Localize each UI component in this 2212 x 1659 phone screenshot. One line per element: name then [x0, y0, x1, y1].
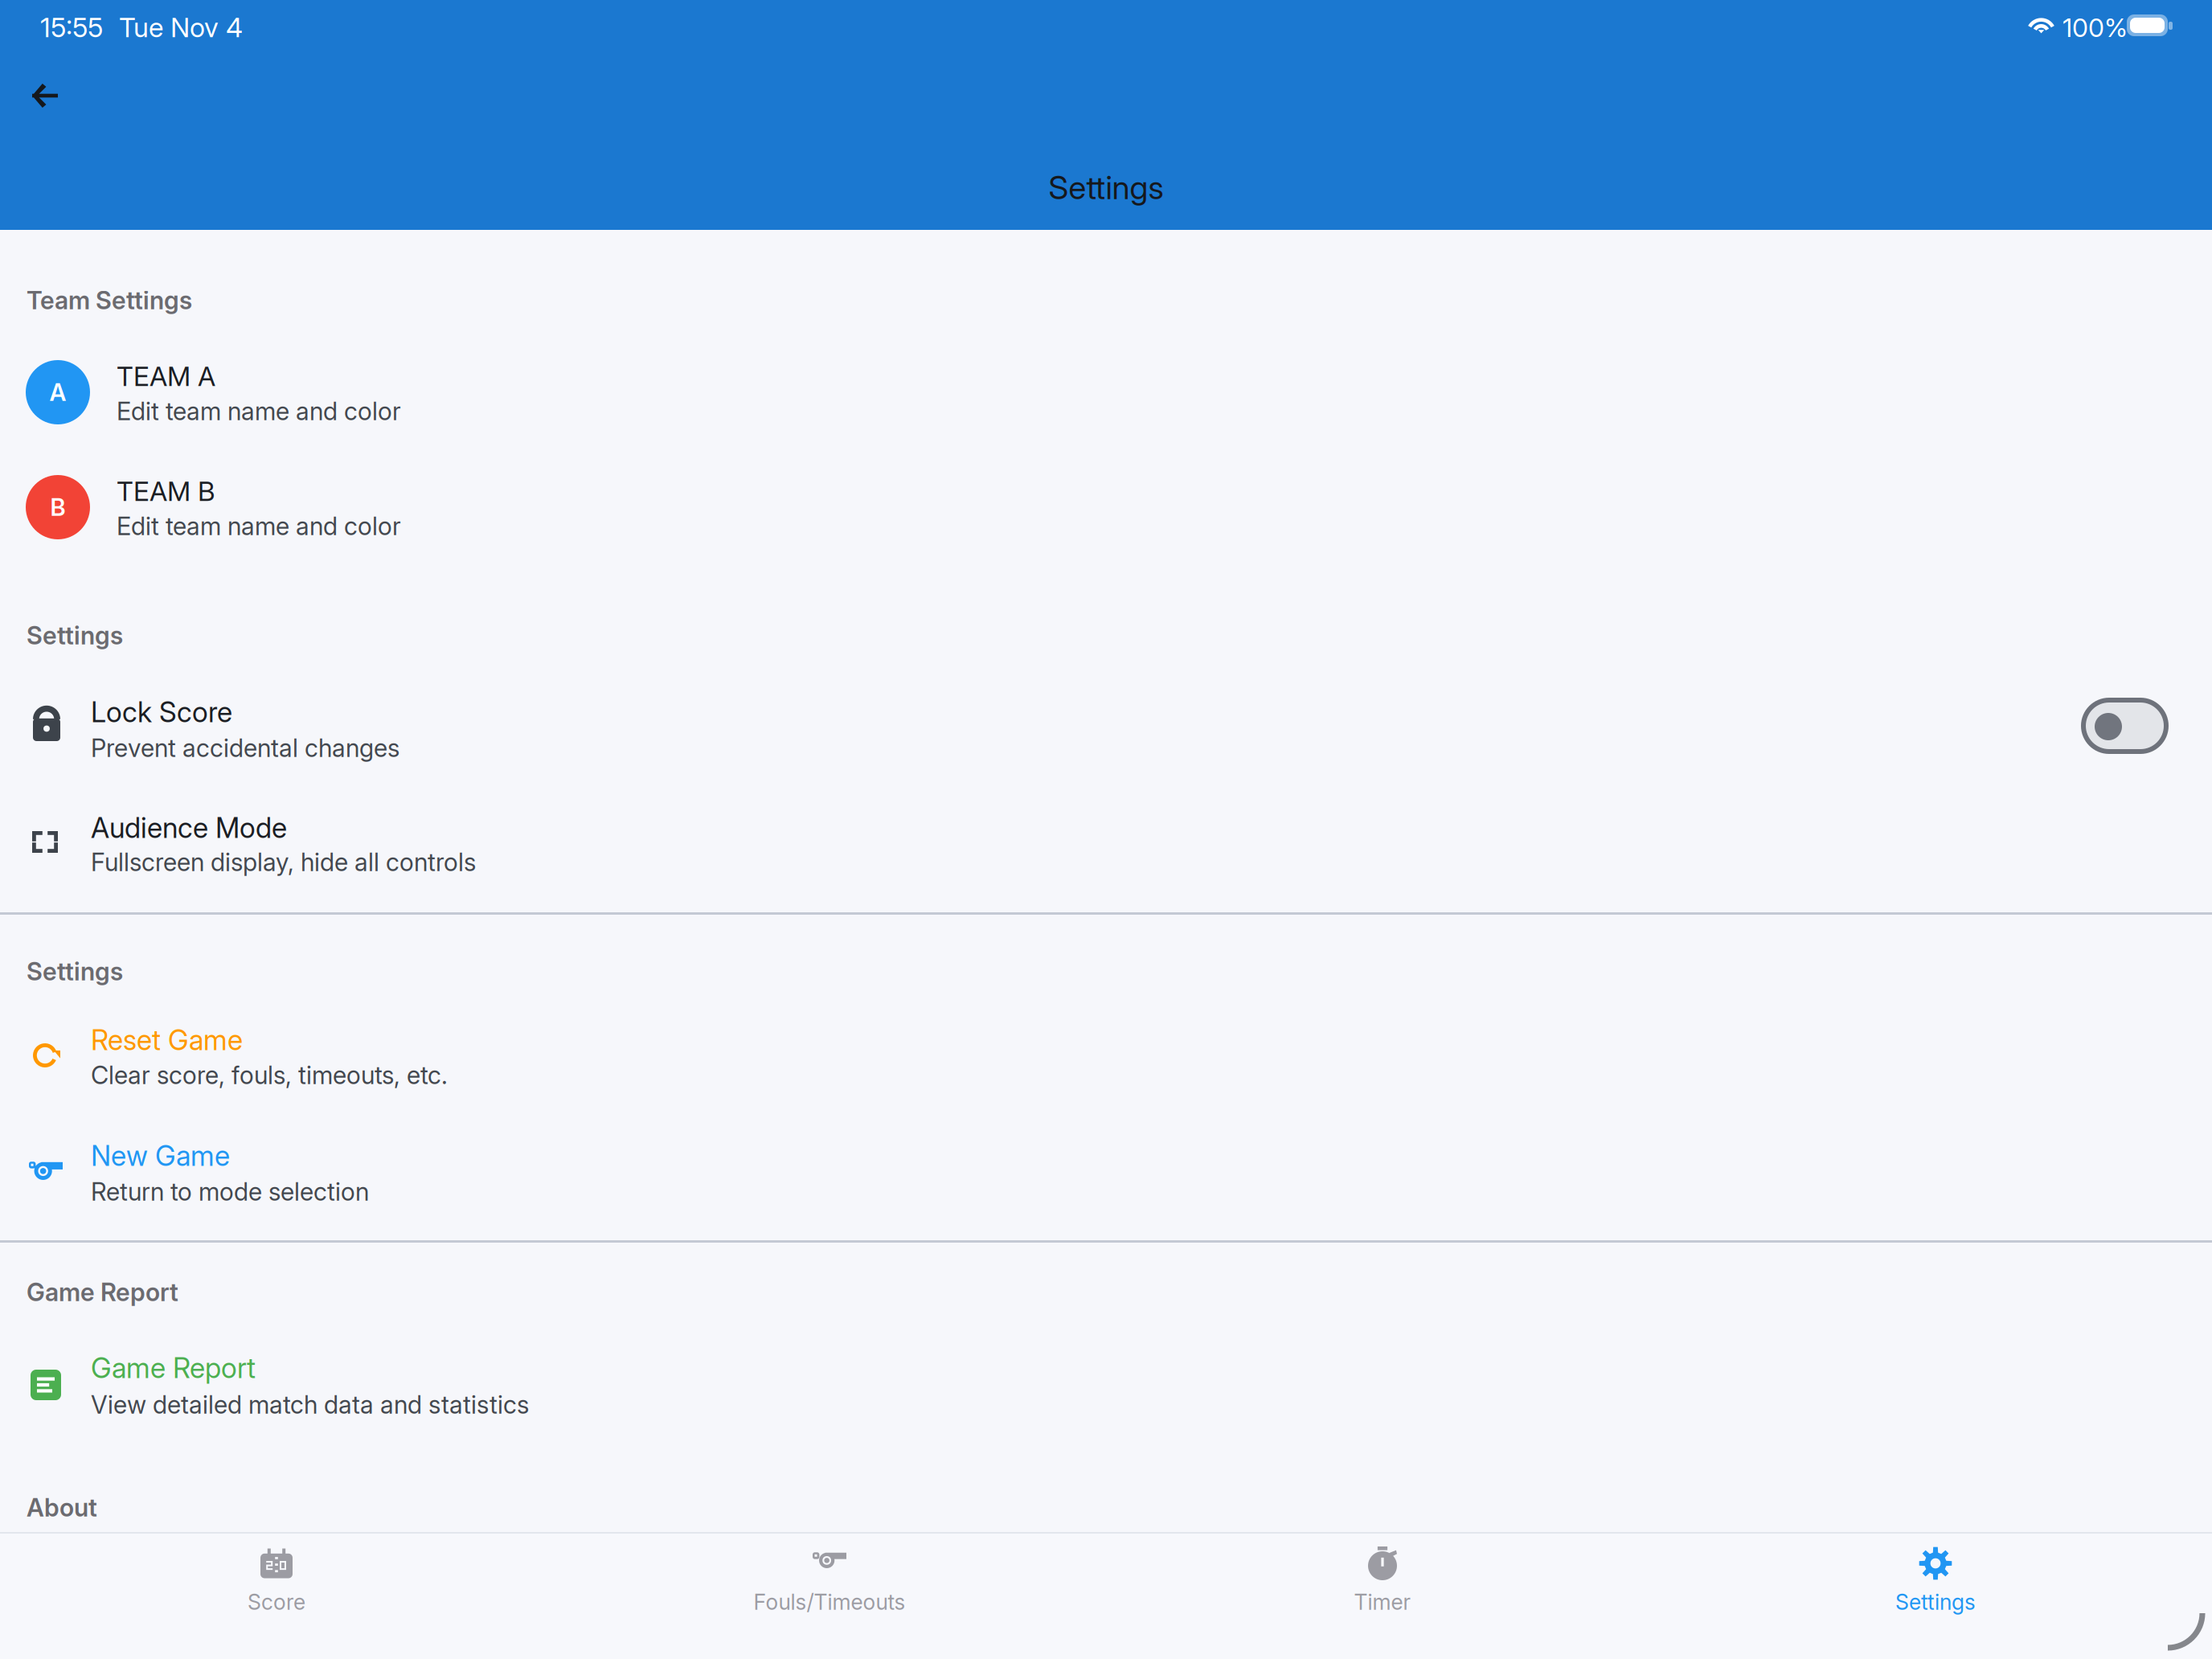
staticText: Reset Game	[91, 1023, 243, 1057]
staticText: Team Settings	[27, 285, 192, 315]
staticText: Return to mode selection	[91, 1177, 369, 1207]
staticText: Clear score, fouls, timeouts, etc.	[91, 1060, 448, 1090]
staticText: About	[27, 1493, 97, 1522]
staticText: Game Report	[91, 1351, 256, 1385]
button[interactable]: A	[0, 360, 2212, 426]
button[interactable]: Audience Mode	[0, 800, 2212, 896]
staticText: Settings	[1895, 1589, 1976, 1615]
staticText: Edit team name and color	[117, 396, 401, 426]
staticText: Prevent accidental changes	[91, 733, 399, 763]
staticText: TEAM A	[117, 360, 215, 392]
staticText: Settings	[1049, 168, 1163, 207]
staticText: Game Report	[27, 1277, 178, 1307]
button[interactable]: Timer	[1106, 1532, 1659, 1659]
staticText: Timer	[1354, 1589, 1411, 1615]
staticText: View detailed match data and statistics	[91, 1390, 529, 1420]
button[interactable]: Reset Game	[0, 1011, 2212, 1108]
button[interactable]: Score	[0, 1532, 553, 1659]
button[interactable]: Fouls/Timeouts	[553, 1532, 1106, 1659]
staticText: 15:55	[40, 11, 103, 44]
staticText: B	[50, 493, 66, 521]
staticText: Settings	[27, 621, 123, 650]
staticText: 100%	[2062, 12, 2128, 43]
staticText: Tue Nov 4	[119, 11, 243, 44]
button[interactable]: Lock Score	[0, 684, 2212, 780]
button[interactable]: B	[0, 475, 2212, 541]
staticText: Fullscreen display, hide all controls	[91, 847, 476, 877]
staticText: Audience Mode	[91, 811, 287, 845]
staticText: Fouls/Timeouts	[754, 1589, 905, 1615]
staticText: TEAM B	[117, 475, 215, 507]
button[interactable]: Settings	[1659, 1532, 2212, 1659]
staticText: A	[49, 378, 66, 407]
staticText: New Game	[91, 1139, 230, 1173]
staticText: Edit team name and color	[117, 511, 401, 541]
button[interactable]: Game Report	[0, 1339, 2212, 1436]
button[interactable]: Back	[1, 55, 89, 136]
staticText: Lock Score	[91, 695, 232, 729]
staticText: Score	[248, 1589, 305, 1615]
staticText: Settings	[27, 956, 123, 986]
button[interactable]: New Game	[0, 1127, 2212, 1223]
